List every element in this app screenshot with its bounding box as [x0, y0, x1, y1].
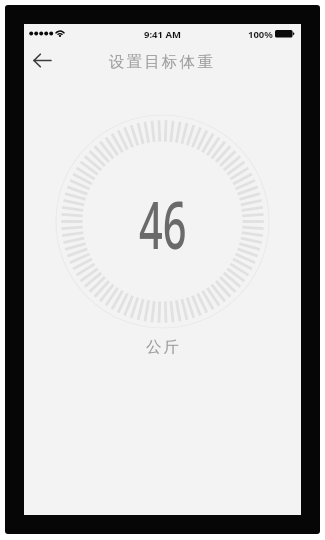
- staticText: 9:41 AM: [144, 28, 181, 41]
- button[interactable]: [26, 46, 60, 76]
- staticText: 46: [139, 178, 187, 264]
- staticText: 设置目标体重: [109, 52, 216, 72]
- staticText: 公斤: [145, 337, 180, 357]
- staticText: 100%: [248, 28, 273, 41]
